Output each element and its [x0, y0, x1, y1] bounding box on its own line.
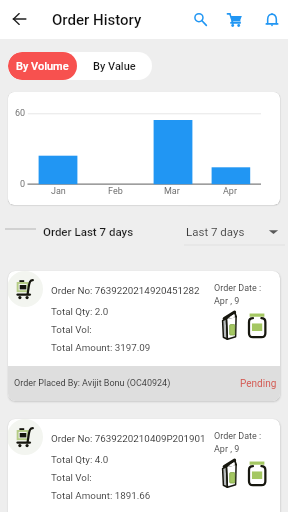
staticText: Order Placed By: Avijit Bonu (OC40924)	[14, 378, 171, 389]
button[interactable]: Order Last 7 days	[43, 216, 134, 246]
staticText: Apr , 9	[214, 296, 240, 307]
staticText: Jan	[51, 186, 66, 197]
staticText: By Volume	[16, 60, 69, 73]
staticText: Order No: 7639220210409P201901	[51, 433, 206, 444]
staticText: Order History	[52, 11, 142, 29]
staticText: Total Qty: 2.0	[51, 306, 109, 317]
staticText: Pending	[240, 378, 277, 390]
staticText: By Value	[93, 60, 136, 73]
staticText: Total Qty: 4.0	[51, 454, 109, 465]
staticText: Total Amount: 3197.09	[51, 342, 151, 353]
button[interactable]: Cart	[217, 0, 252, 39]
staticText: Order Last 7 days	[43, 225, 134, 238]
button[interactable]: By Volume	[8, 52, 77, 80]
staticText: Total Amount: 1891.66	[51, 490, 151, 501]
button[interactable]: Back	[1, 0, 38, 37]
staticText: Order Date :	[214, 431, 262, 442]
button[interactable]: Last 7 days	[186, 216, 282, 246]
staticText: Apr , 9	[214, 444, 240, 455]
staticText: Order Date :	[214, 283, 262, 294]
staticText: Total Vol:	[51, 472, 92, 483]
staticText: Mar	[164, 186, 180, 197]
staticText: Total Vol:	[51, 324, 92, 335]
staticText: 60	[15, 108, 26, 119]
staticText: Apr	[223, 186, 237, 197]
button[interactable]: Order No: 7639220210409P201901	[8, 419, 280, 512]
button[interactable]: Search	[183, 0, 218, 39]
button[interactable]: By Value	[77, 52, 152, 80]
button[interactable]: Order No: 7639220214920451282	[8, 271, 280, 401]
button[interactable]: Notifications	[254, 0, 288, 39]
staticText: Feb	[108, 186, 123, 197]
staticText: Order No: 7639220214920451282	[51, 285, 200, 296]
staticText: Last 7 days	[186, 225, 245, 238]
staticText: 0	[20, 179, 26, 190]
